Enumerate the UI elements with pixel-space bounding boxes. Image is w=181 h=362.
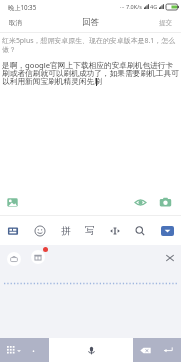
staticText: 写 xyxy=(85,225,95,237)
button[interactable]: 拼 xyxy=(60,225,72,237)
button[interactable]: Symbols xyxy=(0,338,49,362)
button[interactable]: Enter xyxy=(162,344,174,356)
button[interactable]: Hide keyboard xyxy=(161,226,174,236)
staticText: 拼 xyxy=(61,225,71,237)
staticText: 提交 xyxy=(159,19,172,27)
button[interactable]: Search xyxy=(134,225,146,237)
button[interactable]: Camera xyxy=(159,196,172,209)
staticText: 7.0K/s xyxy=(126,3,142,10)
button[interactable]: Emoji xyxy=(34,225,46,237)
staticText: 回答 xyxy=(82,17,99,28)
button[interactable]: Gallery xyxy=(7,225,19,237)
staticText: 4G xyxy=(150,3,158,10)
button[interactable]: 写 xyxy=(84,225,96,237)
button[interactable]: Move cursor xyxy=(109,225,121,237)
staticText: 晚上10:35 xyxy=(8,3,37,11)
staticText: 红米5plus，想屌安卓原生、现在的安卓版本是8.1，怎么做？ xyxy=(2,36,180,54)
button[interactable]: Insert image xyxy=(6,196,19,209)
button[interactable]: 取消 xyxy=(0,13,31,32)
button[interactable]: 提交 xyxy=(150,13,181,32)
button[interactable]: Backspace xyxy=(139,344,152,357)
button[interactable]: Store xyxy=(31,250,45,264)
button[interactable]: Preview xyxy=(134,196,147,209)
button[interactable]: Toolbox xyxy=(7,252,21,266)
staticText: ··· xyxy=(120,3,125,10)
button[interactable]: Close panel xyxy=(164,252,176,264)
button[interactable]: Voice input xyxy=(49,338,133,362)
staticText: 取消 xyxy=(9,19,22,27)
staticText: 是啊，google官网上下载相应的安卓刷机包进行卡刷或者信刷就可以刷机成功了，如… xyxy=(2,60,180,87)
